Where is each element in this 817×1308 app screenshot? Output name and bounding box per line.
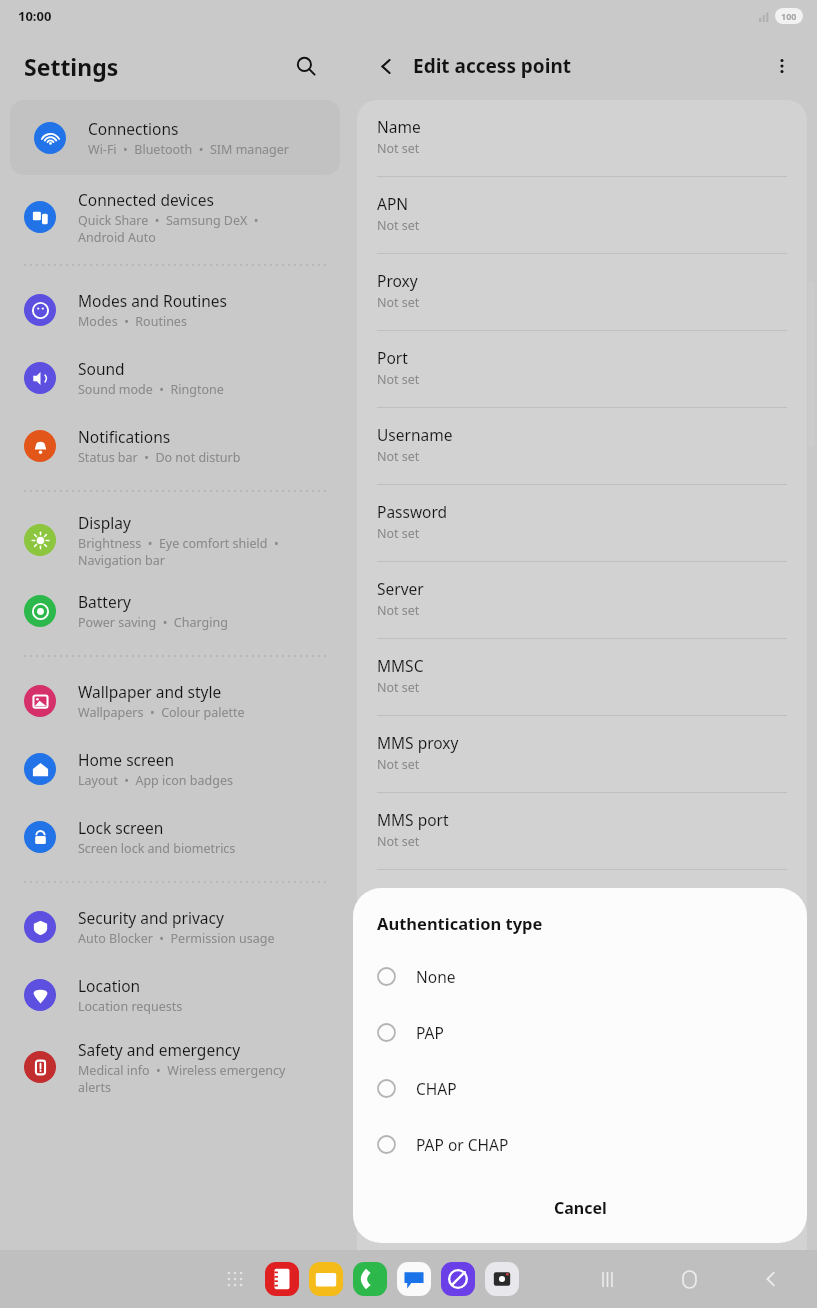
staticText: PAP: [416, 1022, 444, 1043]
button[interactable]: Search: [286, 46, 326, 86]
button[interactable]: Home: [667, 1257, 711, 1301]
staticText: Not set: [377, 217, 420, 234]
staticText: Settings: [24, 51, 286, 82]
button[interactable]: Back: [749, 1257, 793, 1301]
button[interactable]: App: [441, 1262, 475, 1296]
staticText: Lock screen: [78, 817, 164, 838]
staticText: Power saving • Charging: [78, 614, 228, 631]
button[interactable]: Sound: [0, 344, 350, 412]
button[interactable]: Recents: [585, 1257, 629, 1301]
staticText: Not set: [377, 140, 420, 157]
staticText: Username: [377, 424, 453, 445]
button[interactable]: App: [485, 1262, 519, 1296]
staticText: Screen lock and biometrics: [78, 840, 236, 857]
staticText: Modes • Routines: [78, 313, 187, 330]
staticText: MCC: [377, 886, 411, 907]
staticText: Layout • App icon badges: [78, 772, 233, 789]
button[interactable]: Proxy: [357, 254, 807, 330]
button[interactable]: Wallpaper and style: [0, 667, 350, 735]
button[interactable]: Display: [0, 502, 350, 577]
staticText: Authentication type: [377, 912, 543, 934]
staticText: Not set: [377, 910, 420, 927]
button[interactable]: Username: [357, 408, 807, 484]
staticText: Sound: [78, 358, 125, 379]
staticText: MMS port: [377, 809, 449, 830]
staticText: Password: [377, 501, 448, 522]
staticText: Not set: [377, 294, 420, 311]
button[interactable]: MMS proxy: [357, 716, 807, 792]
staticText: Location requests: [78, 998, 183, 1015]
staticText: Name: [377, 116, 421, 137]
staticText: Server: [377, 578, 424, 599]
staticText: 10:00: [18, 7, 52, 25]
button[interactable]: Apps: [218, 1262, 252, 1296]
button[interactable]: Home screen: [0, 735, 350, 803]
staticText: Brightness • Eye comfort shield • Naviga…: [78, 535, 279, 568]
button[interactable]: None: [353, 948, 807, 1004]
staticText: Connected devices: [78, 189, 214, 210]
staticText: MMSC: [377, 655, 424, 676]
staticText: Edit access point: [413, 53, 763, 79]
button[interactable]: Modes and Routines: [0, 276, 350, 344]
button[interactable]: App: [265, 1262, 299, 1296]
button[interactable]: Server: [357, 562, 807, 638]
staticText: Wallpapers • Colour palette: [78, 704, 245, 721]
staticText: 100: [781, 10, 797, 22]
staticText: PAP or CHAP: [416, 1134, 509, 1155]
staticText: Connections: [88, 118, 179, 139]
button[interactable]: Name: [357, 100, 807, 176]
staticText: Sound mode • Ringtone: [78, 381, 224, 398]
staticText: Proxy: [377, 270, 418, 291]
staticText: Home screen: [78, 749, 175, 770]
button[interactable]: Connected devices: [0, 179, 350, 254]
button[interactable]: Back: [368, 48, 404, 84]
staticText: CHAP: [416, 1078, 457, 1099]
staticText: None: [416, 966, 456, 987]
button[interactable]: Port: [357, 331, 807, 407]
button[interactable]: Security and privacy: [0, 893, 350, 961]
staticText: Wi-Fi • Bluetooth • SIM manager: [88, 141, 290, 158]
staticText: Not set: [377, 602, 420, 619]
staticText: Not set: [377, 756, 420, 773]
button[interactable]: Password: [357, 485, 807, 561]
button[interactable]: More options: [763, 47, 801, 85]
button[interactable]: App: [397, 1262, 431, 1296]
button[interactable]: MMSC: [357, 639, 807, 715]
button[interactable]: App: [353, 1262, 387, 1296]
button[interactable]: MCC: [357, 870, 807, 946]
staticText: Safety and emergency: [78, 1039, 241, 1060]
button[interactable]: PAP or CHAP: [353, 1116, 807, 1172]
staticText: Port: [377, 347, 408, 368]
button[interactable]: Connections: [10, 100, 340, 175]
staticText: Status bar • Do not disturb: [78, 449, 241, 466]
button[interactable]: MMS port: [357, 793, 807, 869]
button[interactable]: Cancel: [353, 1181, 807, 1235]
staticText: Not set: [377, 448, 420, 465]
button[interactable]: CHAP: [353, 1060, 807, 1116]
staticText: Location: [78, 975, 141, 996]
staticText: Not set: [377, 833, 420, 850]
button[interactable]: Lock screen: [0, 803, 350, 871]
staticText: Auto Blocker • Permission usage: [78, 930, 275, 947]
staticText: Not set: [377, 371, 420, 388]
staticText: Security and privacy: [78, 907, 224, 928]
staticText: Notifications: [78, 426, 171, 447]
staticText: Display: [78, 512, 131, 533]
staticText: MMS proxy: [377, 732, 459, 753]
staticText: Modes and Routines: [78, 290, 227, 311]
button[interactable]: APN: [357, 177, 807, 253]
staticText: Wallpaper and style: [78, 681, 222, 702]
button[interactable]: PAP: [353, 1004, 807, 1060]
staticText: Battery: [78, 591, 132, 612]
staticText: Not set: [377, 679, 420, 696]
staticText: Not set: [377, 525, 420, 542]
button[interactable]: Safety and emergency: [0, 1029, 350, 1104]
staticText: APN: [377, 193, 409, 214]
staticText: Cancel: [554, 1197, 607, 1219]
button[interactable]: Notifications: [0, 412, 350, 480]
button[interactable]: App: [309, 1262, 343, 1296]
button[interactable]: Location: [0, 961, 350, 1029]
staticText: Quick Share • Samsung DeX • Android Auto: [78, 212, 259, 245]
staticText: Medical info • Wireless emergency alerts: [78, 1062, 286, 1095]
button[interactable]: Battery: [0, 577, 350, 645]
